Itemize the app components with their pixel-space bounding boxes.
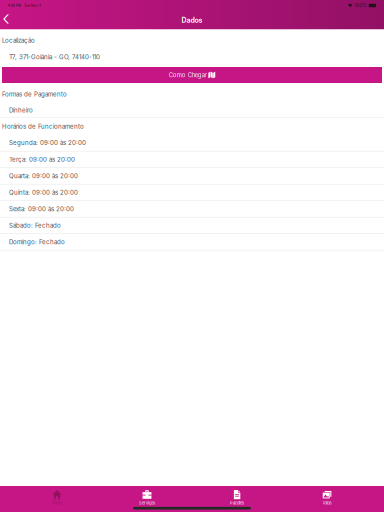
staticText: Localização (2, 37, 35, 44)
staticText: Dinheiro (9, 106, 33, 114)
staticText: Pacotes (230, 501, 244, 505)
button[interactable]: Como Chegar (2, 67, 382, 83)
staticText: Formas de Pagamento (2, 91, 67, 98)
staticText: Dados (181, 16, 202, 24)
staticText: Segunda: 09:00 às 20:00 (9, 139, 86, 146)
staticText: Domingo: Fechado (9, 238, 65, 246)
staticText: Terça: 09:00 às 20:00 (9, 156, 75, 163)
staticText: Serviços (139, 501, 155, 505)
staticText: 100% (355, 3, 367, 8)
button[interactable]: Fotos (282, 488, 372, 508)
staticText: Quinta: 09:00 às 20:00 (9, 189, 78, 196)
button[interactable]: Pacotes (192, 488, 282, 508)
button[interactable]: Serviços (102, 488, 192, 508)
staticText: Tue Nov 3 (21, 3, 41, 8)
staticText: Sábado: Fechado (9, 222, 61, 229)
staticText: Quarta: 09:00 às 20:00 (9, 172, 78, 180)
staticText: Fotos (322, 501, 331, 505)
button[interactable]: Back (0, 11, 15, 30)
staticText: 4:26 PM (8, 3, 21, 8)
staticText: Como Chegar (169, 71, 207, 79)
staticText: Sexta: 09:00 às 20:00 (9, 205, 74, 213)
staticText: T7, 371-Goiânia - GO, 74140-110 (9, 53, 100, 61)
staticText: Início (52, 501, 61, 505)
button[interactable]: Início (12, 488, 102, 508)
staticText: Horários de Funcionamento (2, 123, 84, 130)
